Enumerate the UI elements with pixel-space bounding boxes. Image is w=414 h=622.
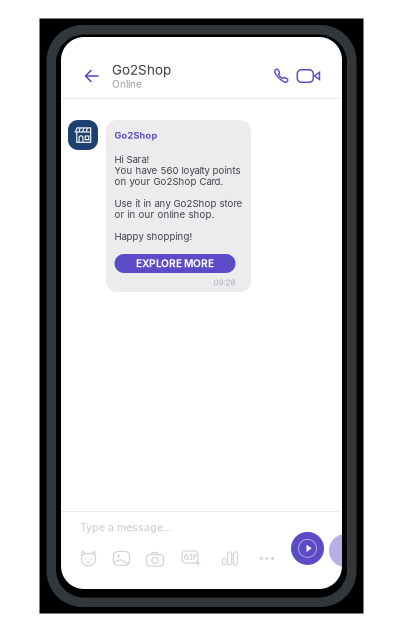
button[interactable]: Video call — [294, 59, 323, 93]
button[interactable]: Stickers — [72, 543, 105, 573]
button[interactable]: Back — [72, 59, 112, 93]
staticText: Online — [112, 78, 142, 90]
button[interactable]: More — [250, 543, 284, 573]
button[interactable]: Send — [291, 532, 324, 565]
button[interactable]: Audio call — [268, 59, 294, 93]
staticText: You have 560 loyalty points — [114, 165, 240, 176]
button[interactable]: EXPLORE MORE — [114, 254, 235, 273]
staticText: Hi Sara! — [114, 154, 149, 165]
staticText: EXPLORE MORE — [136, 257, 214, 270]
button[interactable]: Voice message — [210, 543, 250, 573]
staticText: GIF — [183, 552, 196, 562]
button[interactable]: Camera — [138, 543, 172, 573]
staticText: Go2Shop — [112, 62, 171, 78]
staticText: 09:28 — [213, 278, 235, 287]
button[interactable]: GIF — [172, 543, 210, 573]
staticText: on your Go2Shop Card. — [114, 176, 223, 187]
staticText: Go2Shop — [114, 130, 157, 141]
staticText: Type a message... — [80, 521, 172, 534]
staticText: Use it in any Go2Shop store — [114, 198, 242, 209]
staticText: or in our online shop. — [114, 209, 214, 220]
staticText: Happy shopping! — [114, 231, 192, 242]
button[interactable]: Photos — [105, 543, 138, 573]
